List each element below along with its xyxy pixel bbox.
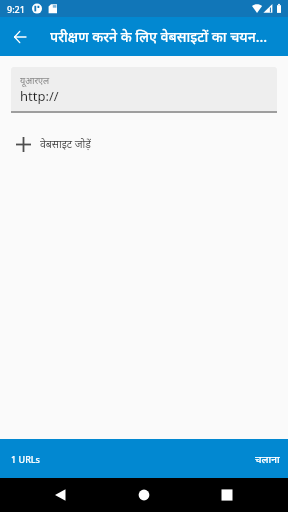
staticText: चलाना: [255, 452, 280, 466]
button[interactable]: वेबसाइट जोड़ें: [0, 133, 288, 155]
button[interactable]: चलाना: [255, 452, 280, 466]
button[interactable]: यूआरएल: [11, 67, 277, 111]
button[interactable]: Home: [104, 478, 184, 512]
staticText: http://: [20, 87, 59, 105]
button[interactable]: Recent apps: [184, 478, 288, 512]
button[interactable]: Navigate up: [0, 17, 40, 56]
staticText: 1 URLs: [11, 453, 40, 465]
button[interactable]: Back: [0, 478, 104, 512]
staticText: 9:21: [7, 3, 25, 15]
staticText: वेबसाइट जोड़ें: [40, 137, 91, 151]
staticText: यूआरएल: [20, 74, 50, 86]
staticText: परीक्षण करने के लिए वेबसाइटों का चयन…: [50, 27, 268, 46]
